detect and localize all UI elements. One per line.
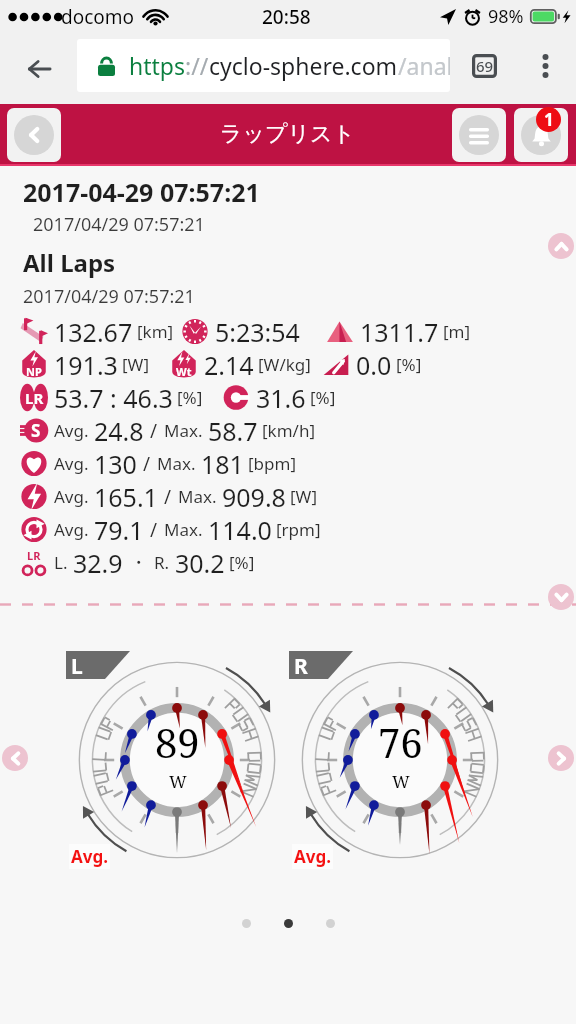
staticText: [W] (290, 485, 317, 508)
staticText: [km/h] (262, 419, 315, 442)
staticText: docomo (61, 4, 135, 30)
staticText: 1 (544, 108, 554, 131)
staticText: :// (185, 50, 209, 81)
staticText: 58.7 (208, 414, 258, 447)
staticText: 2.14 (204, 348, 254, 381)
staticText: 32.9 (73, 546, 123, 579)
staticText: W (392, 770, 410, 793)
staticText: 2017/04/29 07:57:21 (23, 284, 195, 309)
staticText: cyclo-sphere.com (209, 50, 398, 81)
staticText: Avg. (54, 419, 89, 442)
staticText: 191.3 (54, 348, 118, 381)
staticText: [%] (229, 551, 255, 574)
staticText: 79.1 (94, 513, 144, 546)
staticText: Max. (164, 518, 203, 541)
staticText: Avg. (54, 485, 89, 508)
staticText: 5:23:54 (215, 315, 300, 348)
staticText: / (150, 418, 158, 444)
staticText: R (294, 652, 308, 681)
staticText: ラップリスト (220, 120, 356, 148)
staticText: [%] (396, 353, 422, 376)
staticText: LR (27, 548, 41, 563)
staticText: W (169, 770, 187, 793)
staticText: 132.67 (54, 315, 133, 348)
button[interactable]: Scroll down (548, 584, 574, 610)
staticText: Wt (176, 364, 192, 379)
button[interactable]: Previous lap (2, 745, 28, 771)
button[interactable]: Notifications (514, 108, 568, 162)
staticText: 114.0 (208, 513, 272, 546)
staticText: 181 (201, 447, 244, 480)
staticText: Avg. (294, 845, 331, 868)
staticText: 1311.7 (360, 315, 439, 348)
button[interactable]: Tabs (462, 44, 506, 88)
staticText: 130 (94, 447, 137, 480)
staticText: 2017-04-29 07:57:21 (23, 175, 260, 209)
staticText: / (164, 484, 172, 510)
button[interactable]: https (77, 39, 450, 92)
staticText: Max. (164, 419, 203, 442)
staticText: S (31, 419, 41, 442)
staticText: https (129, 50, 185, 81)
staticText: Avg. (71, 845, 108, 868)
staticText: [bpm] (248, 452, 296, 475)
staticText: / (143, 451, 151, 477)
staticText: [%] (310, 386, 336, 409)
staticText: 69 (476, 56, 494, 76)
button[interactable]: Back (7, 108, 61, 162)
button[interactable]: Next lap (548, 745, 574, 771)
staticText: [W/kg] (258, 353, 311, 376)
staticText: 20:58 (262, 4, 311, 30)
staticText: [rpm] (276, 518, 321, 541)
staticText: 165.1 (94, 480, 158, 513)
staticText: 24.8 (94, 414, 144, 447)
staticText: [km] (137, 320, 174, 343)
staticText: Avg. (54, 452, 89, 475)
staticText: 53.7 : 46.3 (54, 381, 173, 414)
staticText: Max. (157, 452, 196, 475)
button[interactable]: Back (6, 33, 73, 104)
staticText: LR (25, 388, 44, 408)
staticText: [W] (122, 353, 149, 376)
staticText: 31.6 (256, 381, 306, 414)
staticText: Avg. (54, 518, 89, 541)
staticText: All Laps (23, 246, 116, 279)
staticText: 2017/04/29 07:57:21 (33, 212, 205, 237)
staticText: L. (54, 551, 68, 574)
staticText: / (150, 517, 158, 543)
staticText: NP (26, 364, 42, 379)
button[interactable]: More options (523, 44, 567, 88)
staticText: [%] (177, 386, 203, 409)
staticText: R. (154, 551, 170, 574)
button[interactable]: Menu (452, 108, 506, 162)
staticText: 0.0 (356, 348, 392, 381)
staticText: 98% (488, 4, 524, 29)
staticText: L (71, 652, 83, 681)
staticText: [m] (443, 320, 471, 343)
button[interactable]: Scroll up (548, 233, 574, 259)
staticText: Max. (178, 485, 217, 508)
staticText: 30.2 (175, 546, 225, 579)
staticText: /analy (398, 50, 450, 81)
staticText: 89 (155, 715, 200, 769)
staticText: ・ (129, 551, 148, 575)
staticText: 909.8 (222, 480, 286, 513)
staticText: 76 (378, 715, 423, 769)
